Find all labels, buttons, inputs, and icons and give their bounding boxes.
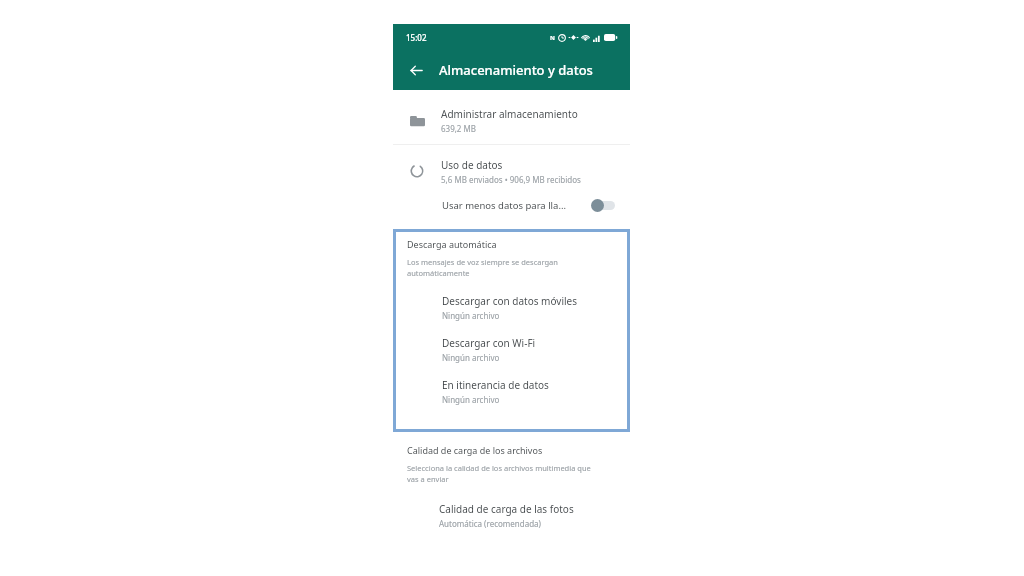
staticText: Calidad de carga de las fotos <box>439 502 574 516</box>
staticText: 639,2 MB <box>441 123 476 134</box>
staticText: Usar menos datos para lla... <box>442 199 591 212</box>
staticText: Almacenamiento y datos <box>439 61 593 79</box>
staticText: Selecciona la calidad de los archivos mu… <box>407 463 591 484</box>
staticText: Descargar con datos móviles <box>442 294 577 308</box>
staticText: Administrar almacenamiento <box>441 107 578 121</box>
staticText: Los mensajes de voz siempre se descargan… <box>407 257 558 278</box>
button[interactable]: Back <box>402 56 430 84</box>
staticText: Ningún archivo <box>442 394 500 405</box>
staticText: Descargar con Wi-Fi <box>442 336 536 350</box>
staticText: 15:02 <box>406 32 427 43</box>
button[interactable]: Usar menos datos para llamadas <box>591 198 617 212</box>
staticText: Calidad de carga de los archivos <box>407 444 543 456</box>
button[interactable]: Descargar con Wi-Fi <box>396 335 627 364</box>
button[interactable]: Descargar con datos móviles <box>396 293 627 322</box>
button[interactable]: Administrar almacenamiento <box>393 99 630 141</box>
button[interactable]: Usar menos datos para lla... <box>393 190 630 220</box>
staticText: 5,6 MB enviados • 906,9 MB recibidos <box>441 174 581 185</box>
staticText: Descarga automática <box>407 238 497 250</box>
staticText: Ningún archivo <box>442 310 500 321</box>
staticText: En itinerancia de datos <box>442 378 549 392</box>
button[interactable]: Calidad de carga de las fotos <box>393 501 630 530</box>
staticText: Ningún archivo <box>442 352 500 363</box>
staticText: N <box>550 34 555 42</box>
button[interactable]: En itinerancia de datos <box>396 377 627 406</box>
staticText: Automática (recomendada) <box>439 518 541 529</box>
button[interactable]: Uso de datos <box>393 152 630 190</box>
staticText: Uso de datos <box>441 158 503 172</box>
